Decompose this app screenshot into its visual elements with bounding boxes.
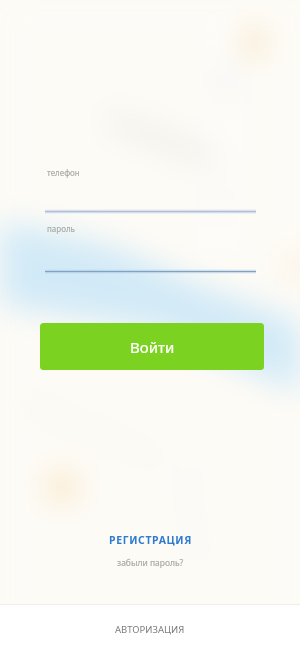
staticText: телефон <box>47 167 80 178</box>
button[interactable]: РЕГИСТРАЦИЯ <box>100 530 200 550</box>
button[interactable]: забыли пароль? <box>100 554 200 572</box>
staticText: РЕГИСТРАЦИЯ <box>109 533 192 547</box>
staticText: Войти <box>130 337 175 357</box>
button[interactable]: телефон <box>45 162 256 214</box>
button[interactable]: пароль <box>45 219 256 272</box>
staticText: забыли пароль? <box>117 557 184 569</box>
button[interactable]: Войти <box>40 323 264 370</box>
staticText: пароль <box>47 223 75 234</box>
staticText: АВТОРИЗАЦИЯ <box>115 623 185 636</box>
button[interactable]: АВТОРИЗАЦИЯ <box>0 605 300 649</box>
